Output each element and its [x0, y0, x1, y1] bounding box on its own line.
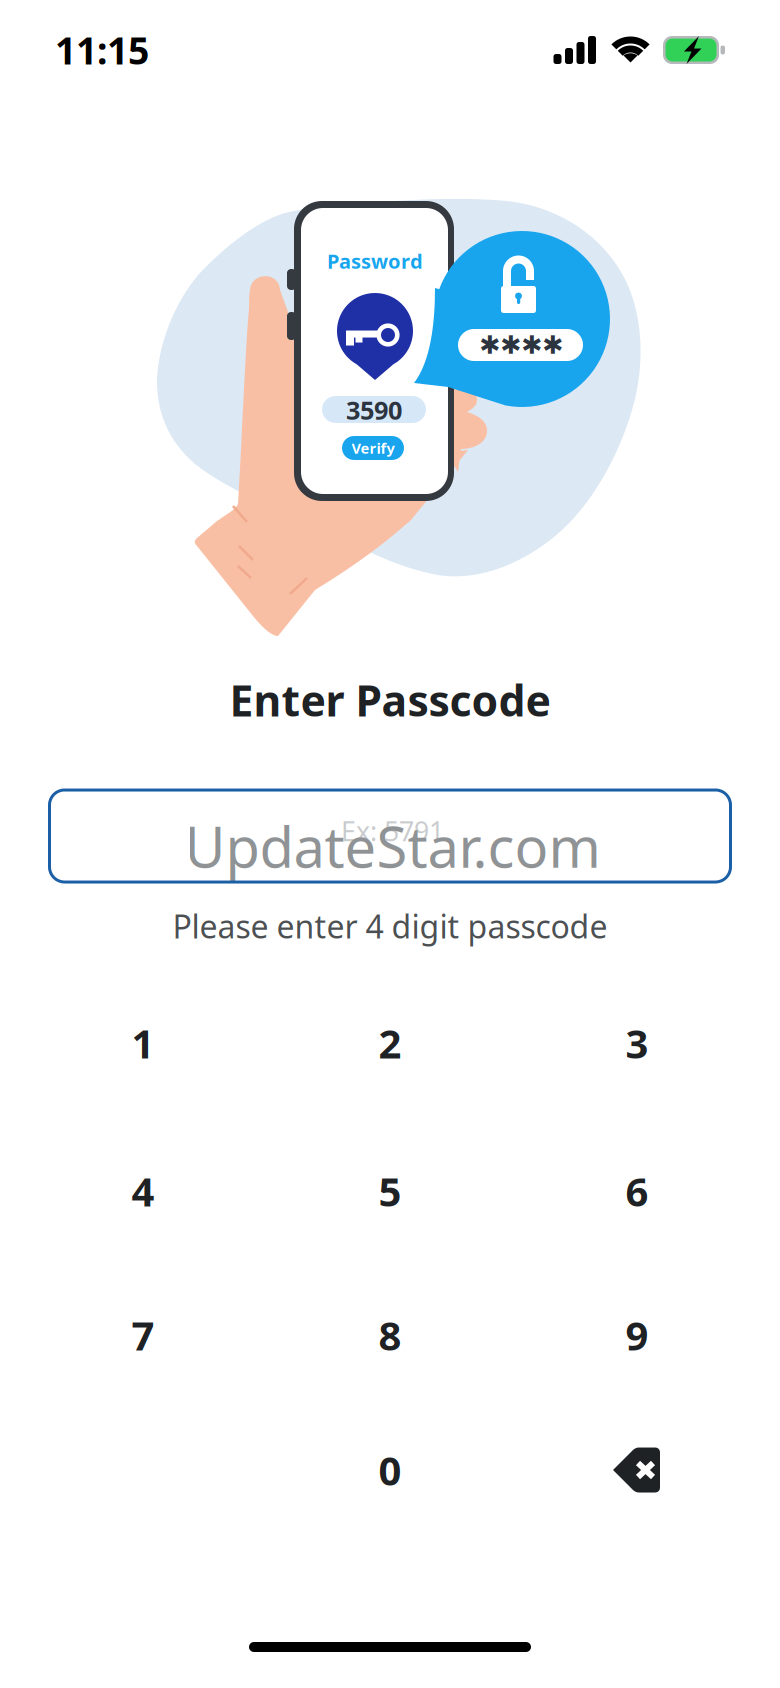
staticText: 4: [131, 1164, 154, 1217]
staticText: 9: [625, 1308, 648, 1361]
staticText: 8: [378, 1308, 401, 1361]
staticText: ✱✱✱✱: [479, 331, 563, 359]
button[interactable]: 8: [266, 1266, 513, 1404]
staticText: Please enter 4 digit passcode: [172, 905, 607, 947]
button[interactable]: Delete: [513, 1404, 760, 1536]
staticText: 11:15: [55, 25, 149, 75]
button[interactable]: 0: [266, 1404, 513, 1536]
staticText: 2: [378, 1016, 401, 1069]
staticText: 1: [131, 1016, 154, 1069]
button[interactable]: 7: [19, 1266, 266, 1404]
staticText: Enter Passcode: [229, 672, 550, 728]
staticText: 6: [625, 1164, 648, 1217]
button[interactable]: 3: [513, 970, 760, 1116]
button[interactable]: 2: [266, 970, 513, 1116]
button[interactable]: 1: [19, 970, 266, 1116]
staticText: 5: [378, 1164, 401, 1217]
staticText: 3: [625, 1016, 648, 1069]
staticText: 0: [378, 1443, 401, 1496]
button[interactable]: 9: [513, 1266, 760, 1404]
staticText: UpdateStar.com: [184, 809, 600, 883]
button[interactable]: 5: [266, 1116, 513, 1266]
staticText: Verify: [351, 438, 394, 458]
staticText: Ex: 5791: [341, 813, 444, 849]
staticText: Password: [327, 248, 423, 274]
button[interactable]: 6: [513, 1116, 760, 1266]
staticText: 3590: [346, 393, 402, 427]
staticText: 7: [131, 1308, 154, 1361]
button[interactable]: 4: [19, 1116, 266, 1266]
